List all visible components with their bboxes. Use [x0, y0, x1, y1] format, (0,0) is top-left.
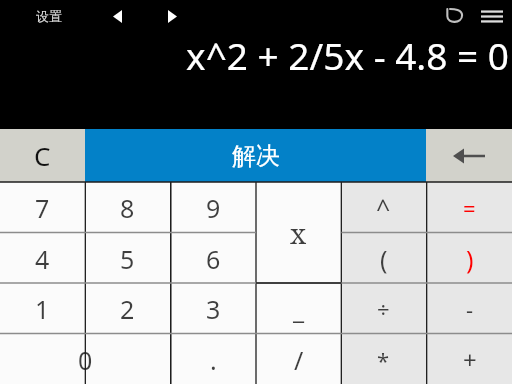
- staticText: +: [463, 343, 477, 376]
- button[interactable]: x: [256, 182, 341, 283]
- staticText: ÷: [377, 294, 390, 324]
- staticText: 解决: [232, 141, 280, 171]
- button[interactable]: Previous: [101, 4, 133, 28]
- staticText: =: [463, 193, 476, 223]
- button[interactable]: 8: [85, 182, 170, 233]
- button[interactable]: *: [341, 334, 426, 384]
- button[interactable]: Next: [156, 4, 188, 28]
- button[interactable]: -: [427, 283, 512, 334]
- button[interactable]: 0: [0, 334, 171, 384]
- staticText: -: [466, 294, 474, 324]
- staticText: C: [34, 138, 51, 173]
- button[interactable]: 5: [85, 233, 170, 284]
- staticText: .: [210, 343, 217, 377]
- button[interactable]: (: [341, 233, 426, 284]
- staticText: 5: [120, 242, 135, 276]
- button[interactable]: =: [427, 182, 512, 233]
- button[interactable]: /: [256, 334, 341, 384]
- button[interactable]: +: [427, 334, 512, 384]
- staticText: 8: [120, 191, 135, 225]
- button[interactable]: 9: [171, 182, 256, 233]
- staticText: 0: [78, 343, 93, 377]
- staticText: *: [377, 345, 390, 375]
- button[interactable]: ^: [341, 182, 426, 233]
- button[interactable]: Backspace: [426, 129, 512, 182]
- button[interactable]: 4: [0, 233, 85, 284]
- staticText: 2: [120, 292, 135, 326]
- staticText: 3: [206, 292, 221, 326]
- button[interactable]: 6: [171, 233, 256, 284]
- staticText: 9: [206, 191, 221, 225]
- button[interactable]: 2: [85, 283, 170, 334]
- button[interactable]: 3: [171, 283, 256, 334]
- button[interactable]: 7: [0, 182, 85, 233]
- button[interactable]: 解决: [85, 129, 426, 182]
- staticText: 7: [35, 191, 50, 225]
- staticText: _: [293, 292, 305, 326]
- staticText: 6: [206, 242, 221, 276]
- button[interactable]: Menu: [477, 1, 507, 31]
- button[interactable]: 设置: [20, 3, 78, 29]
- staticText: ^: [376, 191, 391, 225]
- button[interactable]: _: [256, 283, 341, 334]
- staticText: (: [380, 242, 388, 276]
- staticText: x: [290, 214, 307, 252]
- button[interactable]: ): [427, 233, 512, 284]
- button[interactable]: C: [0, 129, 85, 182]
- button[interactable]: ÷: [341, 283, 426, 334]
- staticText: 设置: [36, 8, 62, 24]
- staticText: 4: [35, 242, 50, 276]
- staticText: x^2 + 2/5x - 4.8 = 0: [186, 30, 509, 80]
- staticText: /: [294, 343, 304, 377]
- button[interactable]: 1: [0, 283, 85, 334]
- button[interactable]: .: [171, 334, 256, 384]
- staticText: ): [466, 242, 474, 276]
- button[interactable]: Undo: [439, 1, 469, 31]
- staticText: 1: [35, 292, 50, 326]
